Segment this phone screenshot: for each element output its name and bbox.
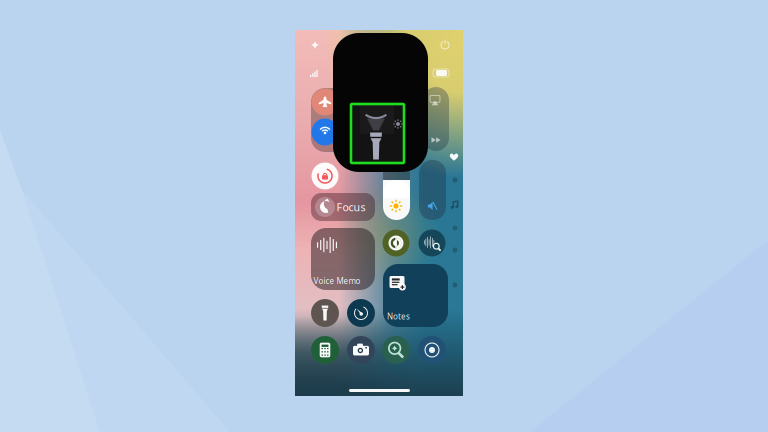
staticText: Notes bbox=[387, 311, 410, 322]
button[interactable]: Screen Recording bbox=[0, 0, 768, 432]
button[interactable] bbox=[0, 0, 768, 432]
button[interactable]: Dark Mode bbox=[0, 0, 768, 432]
button[interactable]: Brightness bbox=[0, 0, 768, 432]
button[interactable]: Notes bbox=[0, 0, 768, 432]
button[interactable]: Camera bbox=[0, 0, 768, 432]
staticText: Focus bbox=[336, 200, 365, 214]
button[interactable]: Timer bbox=[0, 0, 768, 432]
button[interactable]: Wi-Fi bbox=[0, 0, 768, 432]
button[interactable]: Volume bbox=[0, 0, 768, 432]
button[interactable]: Airplane Mode bbox=[0, 0, 768, 432]
button[interactable]: Flashlight bbox=[0, 0, 768, 432]
button[interactable] bbox=[0, 0, 768, 432]
button[interactable]: Music Recognition bbox=[0, 0, 768, 432]
button[interactable]: Magnifier bbox=[0, 0, 768, 432]
staticText: Voice Memo bbox=[313, 276, 360, 286]
button[interactable]: Rotation Lock bbox=[0, 0, 768, 432]
button[interactable]: Calculator bbox=[0, 0, 768, 432]
button[interactable]: Focus bbox=[0, 0, 768, 432]
button[interactable]: Voice Memo bbox=[0, 0, 768, 432]
